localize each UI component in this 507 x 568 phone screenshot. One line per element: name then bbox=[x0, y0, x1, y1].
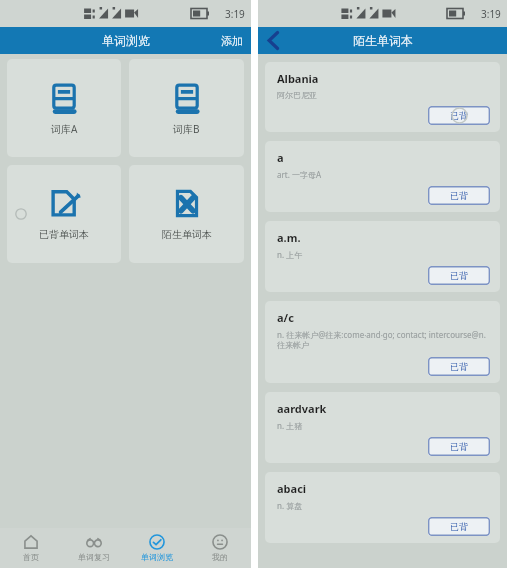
button[interactable]: Albania bbox=[265, 62, 500, 132]
button[interactable]: 词库B bbox=[129, 59, 244, 157]
staticText: 已背单词本 bbox=[39, 228, 89, 241]
staticText: 已背 bbox=[450, 190, 468, 201]
staticText: 3:19 bbox=[225, 7, 245, 21]
staticText: 3:19 bbox=[481, 7, 501, 21]
button[interactable]: 已背 bbox=[428, 186, 490, 205]
button[interactable]: 已背 bbox=[428, 437, 490, 456]
staticText: 已背 bbox=[450, 441, 468, 452]
button[interactable]: a bbox=[265, 141, 500, 212]
button[interactable]: 已背 bbox=[428, 517, 490, 536]
staticText: n. 土猪 bbox=[277, 420, 303, 431]
staticText: n. 上午 bbox=[277, 249, 303, 260]
staticText: 已背 bbox=[450, 521, 468, 532]
staticText: art. 一字母A bbox=[277, 169, 322, 180]
staticText: abaci bbox=[277, 481, 307, 496]
staticText: n. 往来帐户@往来:come‧and‧go; contact; interco… bbox=[277, 329, 490, 351]
button[interactable]: 词库A bbox=[7, 59, 121, 157]
staticText: 已背 bbox=[450, 361, 468, 372]
staticText: 单词复习 bbox=[78, 552, 110, 562]
button[interactable]: 单词复习 bbox=[62, 528, 125, 568]
staticText: 陌生单词本 bbox=[162, 228, 212, 241]
staticText: 单词浏览 bbox=[141, 552, 173, 562]
staticText: 首页 bbox=[23, 552, 39, 562]
staticText: 阿尔巴尼亚 bbox=[277, 90, 317, 100]
staticText: 单词浏览 bbox=[102, 33, 150, 48]
staticText: a bbox=[277, 150, 284, 165]
staticText: aardvark bbox=[277, 401, 327, 416]
staticText: a/c bbox=[277, 310, 294, 325]
button[interactable]: 已背 bbox=[428, 106, 490, 125]
button[interactable]: 添加 bbox=[213, 27, 251, 54]
button[interactable]: 已背 bbox=[428, 357, 490, 376]
button[interactable]: 陌生单词本 bbox=[129, 165, 244, 263]
staticText: 已背 bbox=[450, 270, 468, 281]
staticText: 添加 bbox=[221, 34, 243, 48]
button[interactable]: 已背单词本 bbox=[7, 165, 121, 263]
button[interactable]: 已背 bbox=[428, 266, 490, 285]
staticText: a.m. bbox=[277, 230, 301, 245]
button[interactable]: a.m. bbox=[265, 221, 500, 292]
button[interactable]: 我的 bbox=[188, 528, 251, 568]
staticText: 词库A bbox=[51, 122, 78, 136]
button[interactable]: aardvark bbox=[265, 392, 500, 463]
staticText: Albania bbox=[277, 71, 319, 86]
button[interactable]: Back bbox=[258, 27, 288, 54]
staticText: 我的 bbox=[212, 552, 228, 562]
button[interactable]: a/c bbox=[265, 301, 500, 383]
staticText: n. 算盘 bbox=[277, 500, 303, 511]
button[interactable]: 单词浏览 bbox=[125, 528, 188, 568]
button[interactable]: 首页 bbox=[0, 528, 62, 568]
staticText: 陌生单词本 bbox=[353, 33, 413, 48]
button[interactable]: abaci bbox=[265, 472, 500, 543]
staticText: 已背 bbox=[450, 110, 468, 121]
staticText: 词库B bbox=[173, 122, 200, 136]
